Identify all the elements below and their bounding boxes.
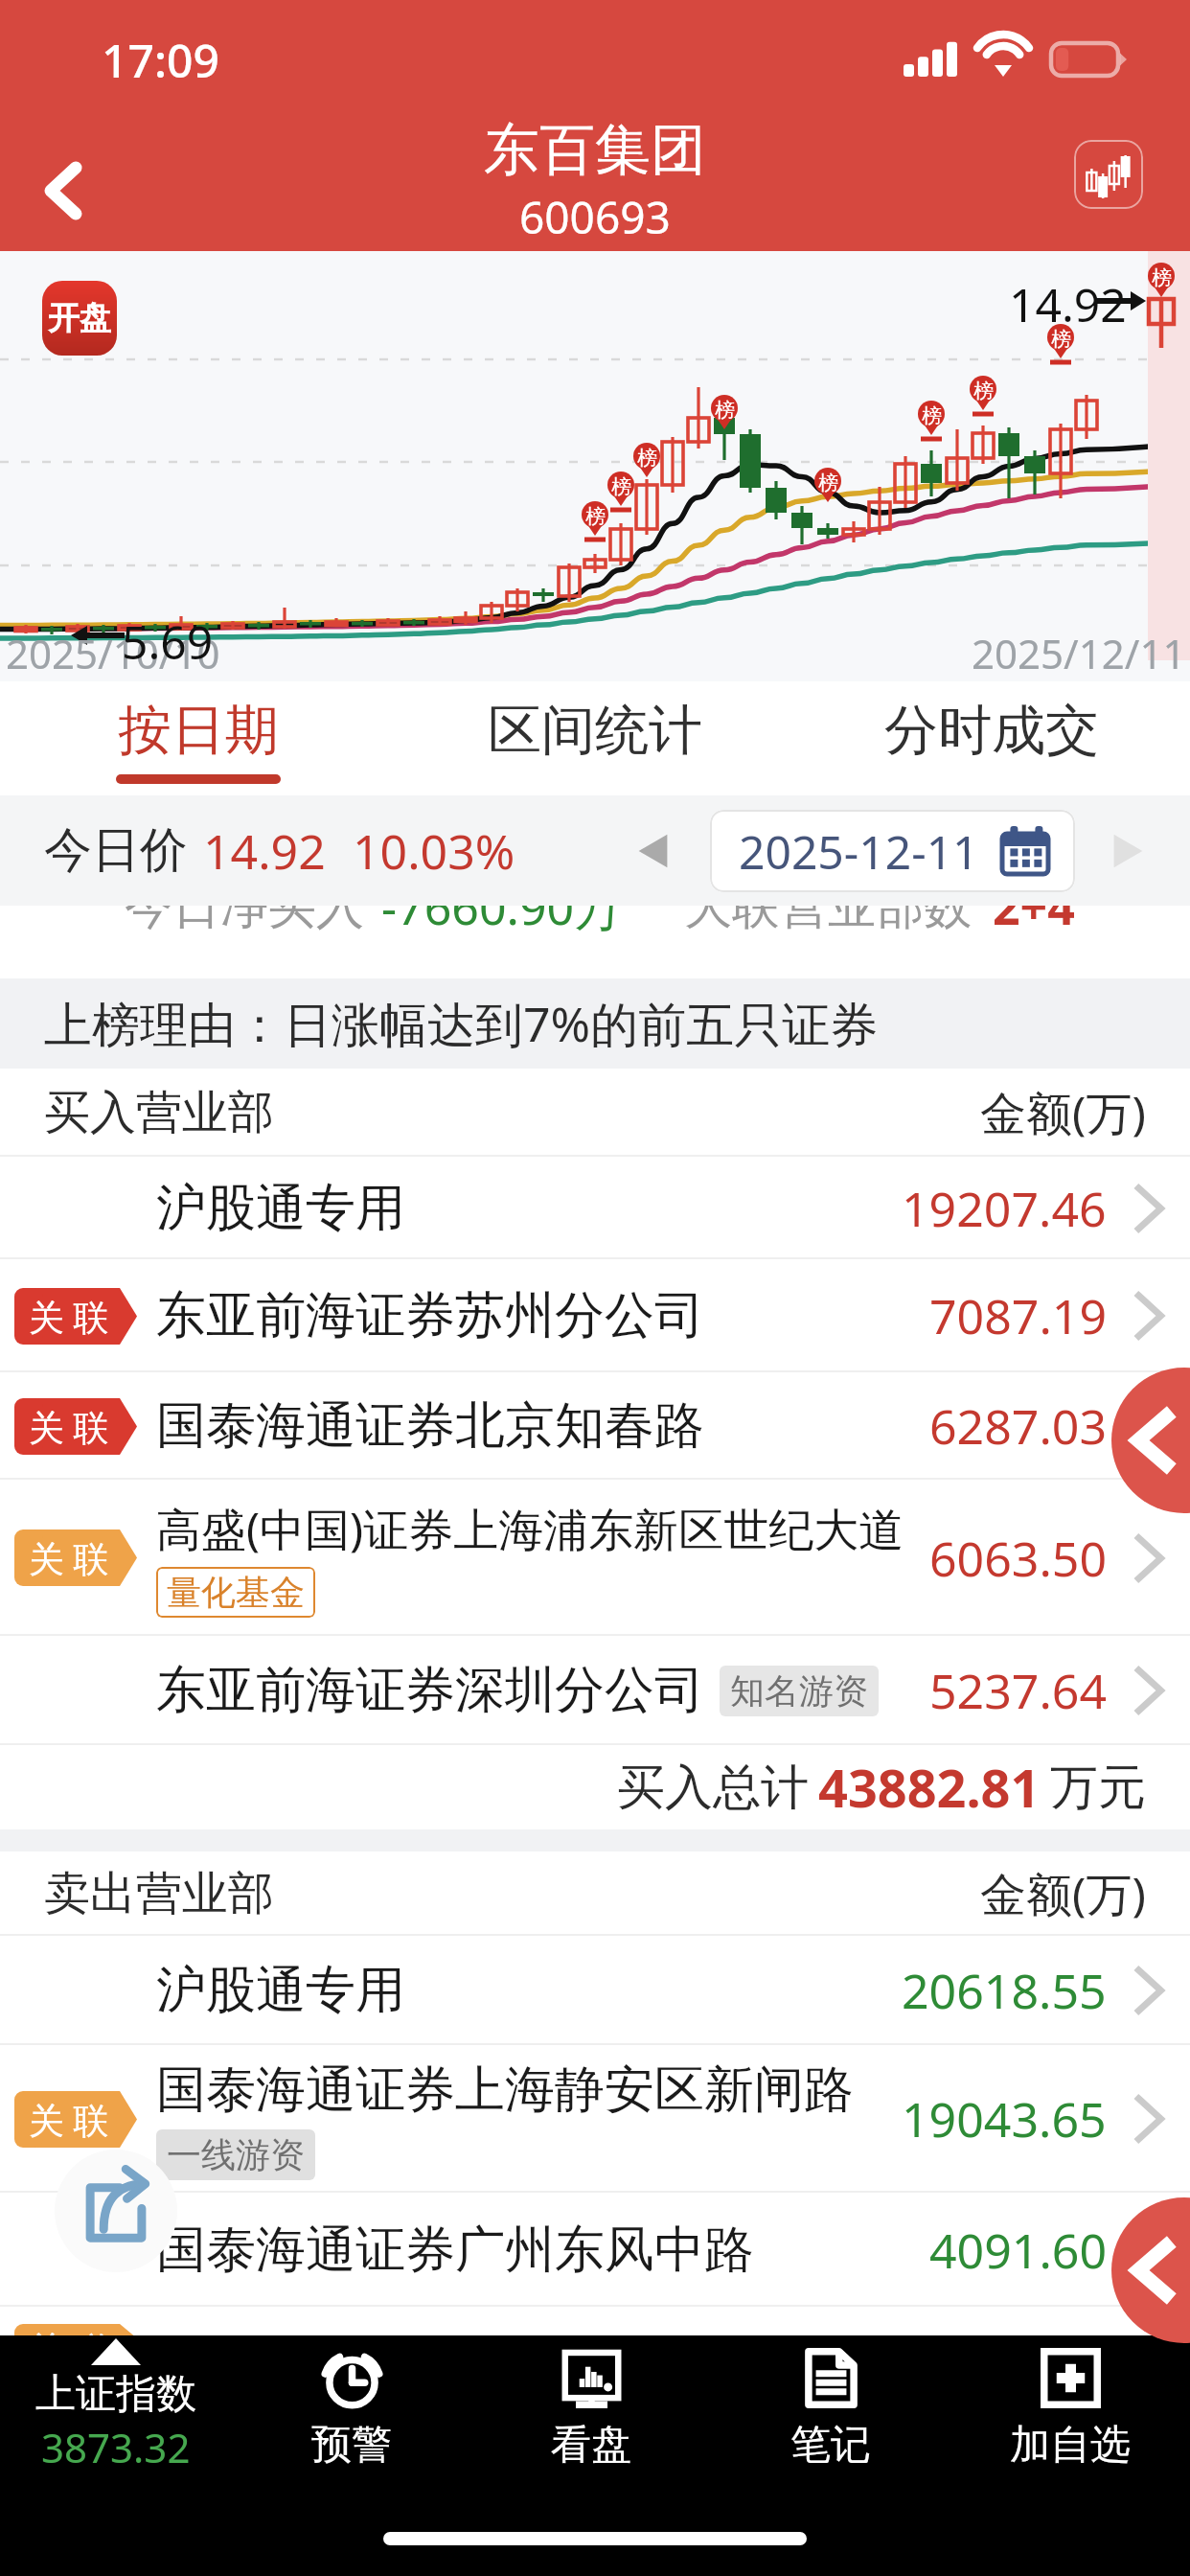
staticText: 一线游资 xyxy=(167,2133,305,2176)
button[interactable]: 国泰海通证券广州东风中路 xyxy=(0,2193,1190,2307)
button[interactable]: 沪股通专用 xyxy=(0,1157,1190,1259)
staticText: 上证指数 xyxy=(35,2369,196,2420)
staticText: 东百集团 xyxy=(484,115,706,185)
staticText: 东亚前海证券深圳分公司 xyxy=(156,1659,704,1722)
staticText: 17:09 xyxy=(102,29,219,91)
button[interactable]: 沪股通专用 xyxy=(0,1936,1190,2045)
staticText: 5.69 xyxy=(122,610,214,673)
staticText: 沪股通专用 xyxy=(156,1177,405,1240)
staticText: 榜 xyxy=(922,403,942,428)
staticText: 东亚前海证券苏州分公司 xyxy=(156,1284,704,1347)
button[interactable]: 开盘 xyxy=(42,281,117,356)
staticText: 19043.65 xyxy=(902,2086,1107,2151)
button[interactable]: 笔记 xyxy=(711,2335,950,2484)
staticText: 按日期 xyxy=(118,697,279,765)
staticText: 国泰海通证券北京知春路 xyxy=(156,1394,704,1458)
staticText: 关 联 xyxy=(29,1292,109,1341)
staticText: 榜 xyxy=(637,446,657,471)
staticText: 上榜理由：日涨幅达到7%的前五只证券 xyxy=(44,991,879,1056)
staticText: 榜 xyxy=(973,379,994,403)
button[interactable]: 东亚前海证券深圳分公司 xyxy=(0,1636,1190,1745)
staticText: 榜 xyxy=(611,474,631,499)
staticText: 榜 xyxy=(715,398,735,423)
staticText: 买入总计 xyxy=(617,1758,809,1818)
staticText: 笔记 xyxy=(790,2420,871,2471)
staticText: 分时成交 xyxy=(884,697,1099,765)
staticText: 6063.50 xyxy=(929,1526,1107,1591)
button[interactable]: 看盘 xyxy=(471,2335,711,2484)
button[interactable]: 关 联 xyxy=(0,1480,1190,1636)
button[interactable]: Expand panel xyxy=(1111,2197,1190,2343)
staticText: 2025-12-11 xyxy=(739,820,979,883)
button[interactable]: 加自选 xyxy=(950,2335,1190,2484)
staticText: 金额(万) xyxy=(980,1862,1146,1925)
staticText: 7087.19 xyxy=(929,1283,1107,1348)
staticText: 看盘 xyxy=(551,2420,631,2471)
staticText: 14.92 xyxy=(203,818,326,884)
staticText: 2025/12/11 xyxy=(972,626,1186,680)
staticText: 知名游资 xyxy=(730,1669,868,1713)
staticText: 6287.03 xyxy=(929,1393,1107,1459)
staticText: 19207.46 xyxy=(902,1176,1107,1241)
staticText: 20618.55 xyxy=(902,1958,1107,2023)
staticText: 榜 xyxy=(1051,327,1071,352)
staticText: 预警 xyxy=(311,2420,392,2471)
button[interactable]: 关 联 xyxy=(0,1259,1190,1372)
button[interactable]: 预警 xyxy=(232,2335,471,2484)
staticText: 卖出营业部 xyxy=(44,1865,274,1922)
button[interactable]: Back xyxy=(15,142,111,238)
staticText: 今日净买入 xyxy=(125,906,364,937)
staticText: 开盘 xyxy=(48,298,111,338)
staticText: 关 联 xyxy=(29,1533,109,1582)
staticText: 2025/10/10 xyxy=(6,626,220,680)
staticText: 5237.64 xyxy=(929,1658,1107,1723)
staticText: 关 联 xyxy=(29,2324,109,2335)
staticText: 43882.81 xyxy=(818,1752,1041,1823)
staticText: 关 联 xyxy=(29,1402,109,1451)
staticText: 国泰海通证券上海静安区新闸路 xyxy=(156,2058,854,2122)
button[interactable]: 按日期 xyxy=(0,681,397,795)
button[interactable]: Expand panel xyxy=(1111,1368,1190,1513)
staticText: 大联营业部数 xyxy=(684,906,972,937)
staticText: 榜 xyxy=(818,471,838,495)
staticText: 4091.60 xyxy=(929,2218,1107,2283)
button[interactable]: 分时成交 xyxy=(793,681,1190,795)
button[interactable]: K-line chart xyxy=(1074,140,1143,209)
staticText: 3873.32 xyxy=(41,2420,191,2474)
staticText: 国泰海通证券广州东风中路 xyxy=(156,2219,754,2282)
button[interactable]: 关 联 xyxy=(0,1372,1190,1480)
staticText: 600693 xyxy=(519,187,671,247)
button[interactable]: Next day xyxy=(1096,821,1156,881)
button[interactable]: 2025-12-11 xyxy=(710,810,1075,892)
button[interactable]: 关 联 xyxy=(0,2045,1190,2193)
staticText: 沪股通专用 xyxy=(156,1959,405,2022)
staticText: 量化基金 xyxy=(167,1571,305,1614)
staticText: 高盛(中国)证券上海浦东新区世纪大道 xyxy=(156,1498,904,1559)
staticText: -7660.90万 xyxy=(381,906,623,939)
staticText: 金额(万) xyxy=(980,1081,1146,1144)
staticText: 14.92 xyxy=(1009,273,1127,335)
staticText: 加自选 xyxy=(1010,2420,1131,2471)
staticText: 关 联 xyxy=(29,2095,109,2144)
staticText: 2+4 xyxy=(993,906,1075,939)
staticText: 万元 xyxy=(1050,1758,1146,1818)
button[interactable]: Share xyxy=(55,2150,177,2272)
button[interactable]: 区间统计 xyxy=(397,681,793,795)
button[interactable]: Previous day xyxy=(626,821,685,881)
staticText: 榜 xyxy=(1152,265,1172,290)
staticText: 今日价 xyxy=(44,820,188,881)
staticText: 区间统计 xyxy=(488,697,702,765)
button[interactable]: 上证指数 xyxy=(0,2335,232,2484)
staticText: 10.03% xyxy=(353,818,515,884)
staticText: 榜 xyxy=(585,504,606,529)
staticText: 买入营业部 xyxy=(44,1084,274,1141)
